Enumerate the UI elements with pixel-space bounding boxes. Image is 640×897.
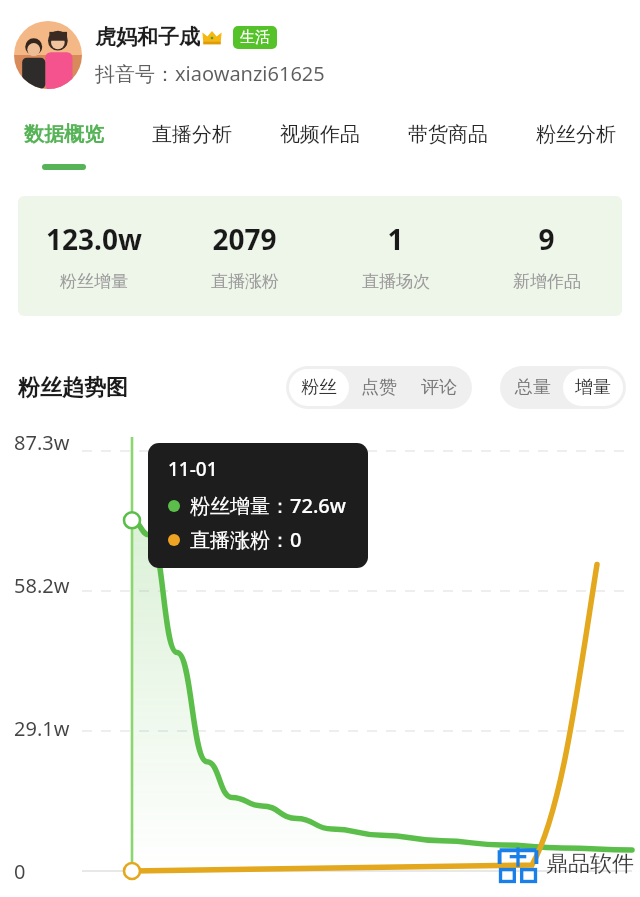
staticText: 评论 [421, 376, 457, 399]
button[interactable]: 直播分析 [128, 110, 256, 158]
button[interactable]: 粉丝分析 [512, 110, 640, 158]
staticText: 2079 [212, 220, 277, 258]
staticText: 29.1w [14, 715, 70, 742]
button[interactable]: 数据概览 [0, 110, 128, 158]
staticText: 带货商品 [408, 122, 488, 147]
staticText: 直播场次 [362, 271, 430, 292]
staticText: 总量 [515, 376, 551, 399]
button[interactable]: Profile photo [14, 21, 82, 89]
staticText: 直播涨粉 [211, 271, 279, 292]
button[interactable]: 9 [471, 196, 622, 316]
button[interactable]: 增量 [563, 369, 623, 406]
staticText: 抖音号：xiaowanzi61625 [95, 60, 325, 87]
staticText: 生活 [240, 28, 270, 47]
staticText: 粉丝 [301, 376, 337, 399]
button[interactable]: 评论 [409, 369, 469, 406]
staticText: 直播分析 [152, 122, 232, 147]
staticText: 粉丝增量 [60, 271, 128, 292]
staticText: 87.3w [14, 429, 70, 456]
button[interactable]: 123.0w [18, 196, 169, 316]
staticText: 粉丝增量：72.6w [190, 492, 346, 519]
staticText: 粉丝分析 [536, 122, 616, 147]
button[interactable]: 带货商品 [384, 110, 512, 158]
staticText: 虎妈和子成 [95, 24, 200, 50]
staticText: 点赞 [361, 376, 397, 399]
button[interactable]: 总量 [503, 369, 563, 406]
staticText: 新增作品 [513, 271, 581, 292]
staticText: 9 [538, 220, 555, 258]
staticText: 鼎品软件 [546, 850, 634, 878]
staticText: 增量 [575, 376, 611, 399]
staticText: 58.2w [14, 572, 70, 599]
staticText: 11-01 [168, 456, 218, 482]
staticText: 粉丝趋势图 [18, 374, 128, 402]
staticText: 直播涨粉：0 [190, 526, 302, 553]
staticText: 1 [387, 220, 404, 258]
staticText: 123.0w [46, 220, 142, 258]
button[interactable]: 生活 [233, 26, 277, 49]
button[interactable]: 1 [320, 196, 471, 316]
staticText: 数据概览 [24, 122, 104, 147]
staticText: 0 [14, 858, 26, 885]
button[interactable]: 粉丝 [289, 369, 349, 406]
button[interactable]: 视频作品 [256, 110, 384, 158]
button[interactable]: 2079 [169, 196, 320, 316]
staticText: 视频作品 [280, 122, 360, 147]
button[interactable]: 点赞 [349, 369, 409, 406]
